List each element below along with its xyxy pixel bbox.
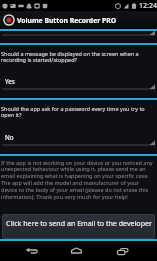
staticText: Yes xyxy=(5,77,15,86)
staticText: Should a message be displayed on the scr… xyxy=(1,50,151,64)
staticText: If the app is not working on your device… xyxy=(1,159,156,201)
staticText: 12:24 xyxy=(139,1,157,11)
staticText: Volume Button Recorder PRO xyxy=(17,16,117,25)
button[interactable]: Back xyxy=(12,241,52,261)
button[interactable]: Recent apps xyxy=(103,241,143,261)
staticText: Should the app ask for a password every … xyxy=(1,105,151,119)
button[interactable]: Click here to send an Email to the devel… xyxy=(2,214,155,239)
button[interactable]: No xyxy=(0,131,157,148)
button[interactable]: Home xyxy=(57,241,97,261)
staticText: No xyxy=(5,133,14,142)
button[interactable]: Yes xyxy=(0,75,157,92)
staticText: Click here to send an Email to the devel… xyxy=(6,218,152,228)
button[interactable]: Volume Button Recorder PRO xyxy=(0,11,157,29)
